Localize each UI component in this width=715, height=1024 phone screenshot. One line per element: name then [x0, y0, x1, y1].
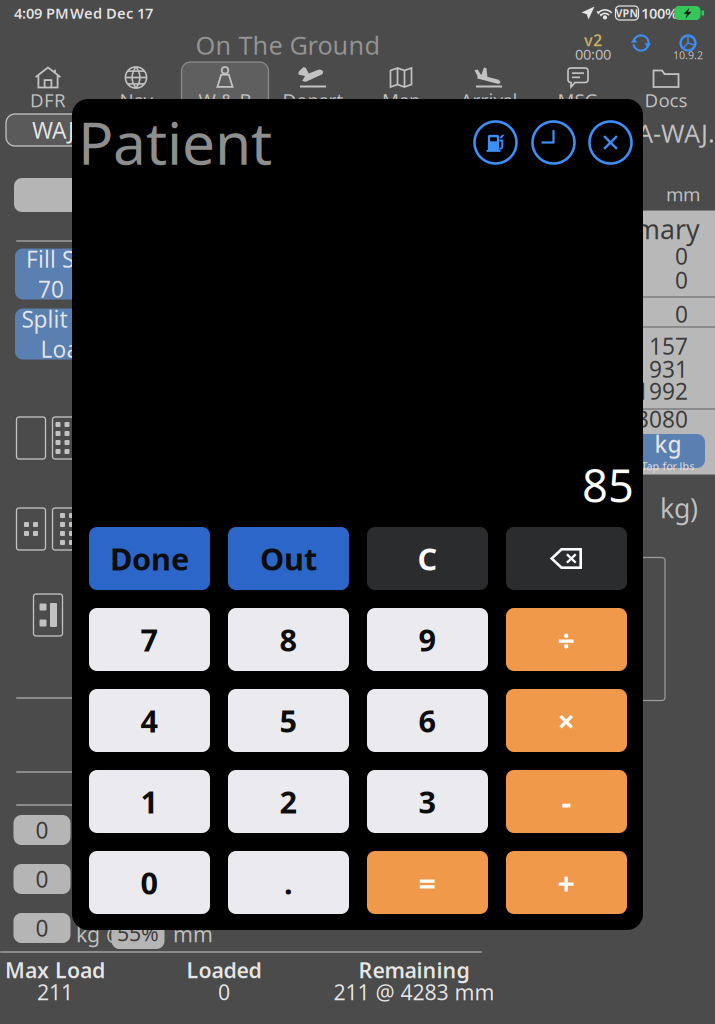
staticText: VPN	[615, 6, 638, 20]
button[interactable]: WAJ.	[6, 114, 156, 146]
button[interactable]: 5	[228, 689, 349, 752]
staticText: mm	[173, 920, 213, 948]
staticText: 9	[418, 619, 436, 660]
button[interactable]: ×	[506, 689, 627, 752]
button[interactable]: Seat layout B	[16, 508, 45, 550]
staticText: 0	[218, 978, 230, 1006]
button[interactable]: Fuel	[473, 120, 517, 164]
staticText: v2	[584, 29, 602, 51]
button[interactable]: Arrival	[445, 62, 532, 110]
staticText: 5	[279, 700, 297, 741]
staticText: Load	[40, 334, 93, 364]
staticText: Arrival	[460, 88, 517, 112]
staticText: 0	[675, 241, 688, 271]
staticText: 3080	[636, 404, 688, 434]
staticText: 55%	[117, 919, 159, 947]
button[interactable]: MSG	[534, 62, 621, 110]
staticText: Fill Seat	[26, 244, 108, 274]
staticText: Remaining	[358, 956, 469, 984]
staticText: Out	[260, 538, 317, 579]
button[interactable]: Out	[228, 527, 349, 590]
staticText: 0	[675, 265, 688, 295]
button[interactable]: =	[367, 851, 488, 914]
button[interactable]: 4	[89, 689, 210, 752]
staticText: 85	[582, 455, 634, 515]
button[interactable]: Fill Seat	[15, 248, 119, 299]
button[interactable]: 0	[89, 851, 210, 914]
button[interactable]: 0	[13, 913, 70, 943]
button[interactable]: Sync	[626, 28, 656, 58]
staticText: 0	[35, 913, 48, 943]
staticText: kg)	[660, 490, 698, 526]
button[interactable]: 2	[228, 770, 349, 833]
button[interactable]: 9	[367, 608, 488, 671]
button[interactable]: Done	[89, 527, 210, 590]
staticText: .	[284, 862, 293, 903]
staticText: 157	[649, 331, 688, 361]
staticText: kg @	[76, 920, 125, 948]
staticText: =	[418, 862, 436, 903]
button[interactable]: .	[228, 851, 349, 914]
staticText: Max Load	[5, 956, 105, 984]
staticText: 100%	[641, 3, 678, 23]
button[interactable]: Map	[357, 62, 444, 110]
button[interactable]: 7	[89, 608, 210, 671]
button[interactable]: kg	[631, 434, 705, 468]
staticText: Split Pax	[21, 304, 112, 334]
staticText: 70 kg	[38, 274, 96, 304]
staticText: mmary	[610, 211, 700, 247]
staticText: Loaded	[186, 956, 261, 984]
button[interactable]: Seat layout C	[52, 508, 81, 550]
staticText: W & B	[198, 88, 251, 112]
button[interactable]: Docs	[622, 62, 709, 110]
staticText: 0	[140, 862, 158, 903]
button[interactable]: C	[367, 527, 488, 590]
staticText: 0	[35, 815, 48, 845]
staticText: 00:00	[575, 44, 611, 64]
staticText: Patient	[78, 103, 272, 181]
staticText: WAJ.	[32, 115, 80, 145]
staticText: 3	[418, 781, 436, 822]
staticText: Map	[382, 88, 420, 112]
button[interactable]: Split Pax	[15, 308, 119, 359]
button[interactable]: Settings	[673, 26, 703, 60]
button[interactable]: ÷	[506, 608, 627, 671]
button[interactable]: 0	[13, 864, 70, 894]
button[interactable]: 0	[13, 815, 70, 845]
staticText: 4	[140, 700, 158, 741]
button[interactable]: Backspace	[506, 527, 627, 590]
button[interactable]: -	[506, 770, 627, 833]
button[interactable]: 6	[367, 689, 488, 752]
staticText: 0	[675, 299, 688, 329]
staticText: 7	[140, 619, 158, 660]
button[interactable]: Time	[531, 120, 575, 164]
staticText: 1	[140, 781, 158, 822]
staticText: Docs	[644, 88, 687, 112]
staticText: 8	[279, 619, 297, 660]
staticText: DFR	[30, 88, 66, 112]
staticText: On The Ground	[195, 28, 380, 62]
button[interactable]: DFR	[4, 62, 91, 110]
button[interactable]: Stretcher layout	[33, 594, 62, 636]
staticText: ×	[557, 700, 575, 741]
button[interactable]: 8	[228, 608, 349, 671]
button[interactable]: W & B	[181, 62, 268, 110]
staticText: Depart	[282, 88, 343, 112]
staticText: AVA-WAJ.	[608, 116, 715, 150]
staticText: 931	[649, 354, 688, 384]
staticText: Nav	[119, 88, 152, 112]
button[interactable]: Empty cabin	[16, 417, 45, 459]
staticText: Done	[110, 538, 189, 579]
staticText: 211	[37, 978, 73, 1006]
button[interactable]: +	[506, 851, 627, 914]
button[interactable]: Depart	[269, 62, 356, 110]
staticText: MSG	[557, 88, 598, 112]
button[interactable]: Nav	[92, 62, 179, 110]
button[interactable]: Seat layout A	[52, 417, 81, 459]
staticText: kg	[654, 429, 681, 459]
button[interactable]: Close	[588, 120, 632, 164]
staticText: -	[561, 781, 571, 822]
button[interactable]: 3	[367, 770, 488, 833]
staticText: 10.9.2	[673, 48, 703, 62]
button[interactable]: 1	[89, 770, 210, 833]
